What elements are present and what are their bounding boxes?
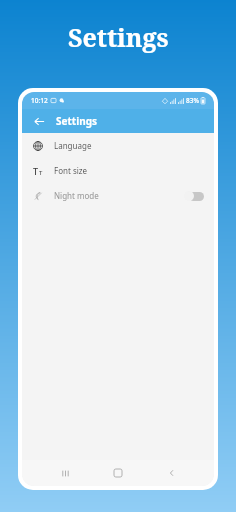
button[interactable]: Language bbox=[22, 133, 214, 158]
staticText: T bbox=[39, 169, 43, 177]
button[interactable]: Recent apps bbox=[54, 462, 76, 484]
staticText: Night mode bbox=[54, 190, 99, 201]
staticText: Settings bbox=[68, 20, 169, 54]
staticText: 83% bbox=[186, 96, 199, 105]
staticText: Font size bbox=[54, 165, 88, 176]
staticText: 10:12 bbox=[31, 96, 48, 105]
staticText: T bbox=[33, 165, 39, 177]
button[interactable]: T bbox=[22, 158, 214, 183]
button[interactable]: Back bbox=[31, 113, 47, 129]
button[interactable]: Back bbox=[161, 462, 183, 484]
staticText: Settings bbox=[56, 114, 97, 128]
button[interactable]: Night mode bbox=[22, 183, 214, 208]
button[interactable]: Night mode toggle bbox=[184, 191, 204, 201]
button[interactable]: Home bbox=[107, 462, 129, 484]
staticText: Language bbox=[54, 140, 92, 151]
